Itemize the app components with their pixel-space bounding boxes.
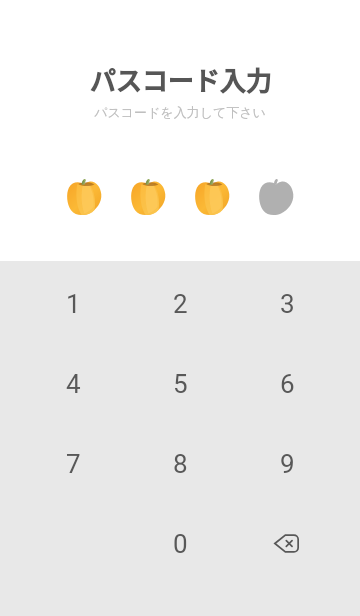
- button[interactable]: 7: [20, 424, 127, 504]
- button[interactable]: 3: [234, 264, 341, 344]
- button[interactable]: 8: [127, 424, 234, 504]
- button[interactable]: 2: [127, 264, 234, 344]
- button[interactable]: 4: [20, 344, 127, 424]
- button[interactable]: 5: [127, 344, 234, 424]
- staticText: パスコード入力: [89, 61, 272, 99]
- other: Passcode: 3 of 4 digits entered: [0, 175, 360, 215]
- button[interactable]: 1: [20, 264, 127, 344]
- staticText: 6: [280, 369, 295, 399]
- other: Backspace: [274, 534, 299, 553]
- staticText: 4: [66, 369, 81, 399]
- staticText: 3: [280, 289, 295, 319]
- button[interactable]: 9: [234, 424, 341, 504]
- button[interactable]: Backspace: [234, 504, 341, 584]
- staticText: 0: [173, 529, 188, 559]
- staticText: パスコードを入力して下さい: [94, 104, 266, 120]
- staticText: 7: [66, 449, 81, 479]
- staticText: 9: [280, 449, 295, 479]
- staticText: 5: [173, 369, 188, 399]
- staticText: 2: [173, 289, 188, 319]
- button[interactable]: 0: [127, 504, 234, 584]
- staticText: 8: [173, 449, 188, 479]
- button[interactable]: 6: [234, 344, 341, 424]
- staticText: 1: [66, 289, 81, 319]
